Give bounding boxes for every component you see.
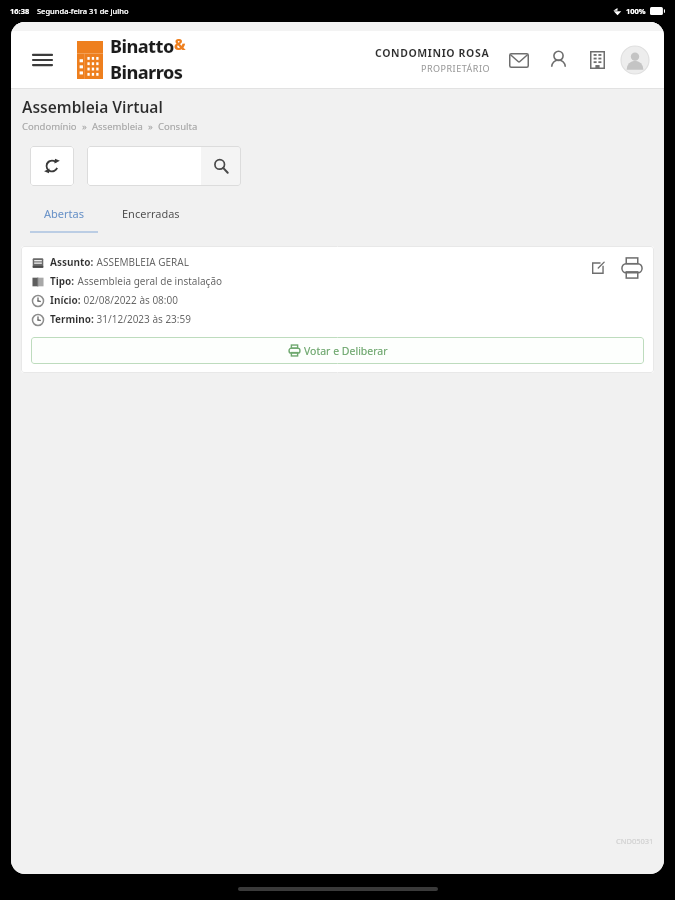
staticText: 02/08/2022 às 08:00: [81, 293, 178, 307]
staticText: Termino:: [50, 312, 94, 326]
staticText: Binarros: [110, 60, 183, 85]
button[interactable]: Abertas: [32, 201, 96, 226]
staticText: »: [143, 120, 158, 133]
button[interactable]: Encerradas: [110, 201, 192, 226]
staticText: Encerradas: [122, 206, 180, 221]
button[interactable]: Mensagens: [504, 45, 534, 75]
staticText: 16:38: [10, 6, 30, 16]
staticText: Segunda-feira 31 de julho: [37, 6, 129, 16]
staticText: Assembleia Virtual: [22, 96, 163, 117]
staticText: Binatto: [110, 34, 174, 59]
button[interactable]: Imprimir: [620, 256, 644, 280]
staticText: Tipo:: [50, 274, 75, 288]
button[interactable]: Abrir: [586, 256, 610, 280]
staticText: PROPRIETÁRIO: [421, 62, 490, 74]
button[interactable]: Condomínio: [582, 45, 612, 75]
staticText: Consulta: [158, 120, 198, 133]
staticText: 31/12/2023 às 23:59: [94, 312, 191, 326]
staticText: CND05031: [616, 836, 654, 846]
button[interactable]: Atualizar: [30, 146, 74, 186]
button[interactable]: Conta do usuário: [620, 45, 650, 75]
button[interactable]: Votar e Deliberar: [31, 337, 644, 364]
button[interactable]: Menu: [25, 43, 59, 77]
staticText: Assembleia: [92, 120, 143, 133]
staticText: Abertas: [44, 206, 84, 221]
button[interactable]: Perfil: [543, 45, 573, 75]
staticText: Início:: [50, 293, 81, 307]
staticText: Votar e Deliberar: [304, 344, 388, 358]
staticText: 100%: [626, 6, 646, 16]
staticText: &: [174, 34, 186, 54]
staticText: CONDOMINIO ROSA: [375, 46, 490, 60]
button[interactable]: Pesquisar: [201, 146, 241, 186]
staticText: Assembleia geral de instalação: [75, 274, 223, 288]
staticText: Assunto:: [50, 255, 94, 269]
staticText: »: [77, 120, 92, 133]
staticText: Condomínio: [22, 120, 77, 133]
staticText: ASSEMBLEIA GERAL: [94, 255, 189, 269]
